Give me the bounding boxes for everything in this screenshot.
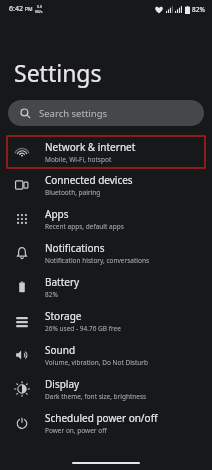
staticText: 0.6	[37, 4, 42, 9]
staticText: Power on, power off	[45, 426, 107, 435]
button[interactable]: Battery	[0, 270, 212, 304]
staticText: 6:42	[9, 4, 23, 14]
staticText: Dark theme, font size, brightness	[45, 392, 147, 401]
staticText: Notification history, conversations	[45, 256, 150, 265]
button[interactable]: Scheduled power on/off	[0, 406, 212, 440]
staticText: Storage	[45, 309, 82, 323]
staticText: Notifications	[45, 241, 105, 255]
staticText: 82%	[192, 5, 205, 14]
staticText: Bluetooth, pairing	[45, 188, 101, 197]
button[interactable]: Sound	[0, 338, 212, 372]
staticText: KB/s	[35, 9, 43, 14]
staticText: Sound	[45, 343, 76, 357]
staticText: 82%	[45, 290, 58, 299]
button[interactable]: Network & internet	[7, 136, 205, 168]
staticText: Search settings	[39, 107, 108, 120]
button[interactable]: Apps	[0, 202, 212, 236]
staticText: PM	[25, 6, 33, 13]
button[interactable]: Search settings	[8, 100, 204, 126]
staticText: Display	[45, 377, 80, 391]
staticText: Mobile, Wi-Fi, hotspot	[45, 155, 112, 164]
staticText: Connected devices	[45, 173, 133, 187]
button[interactable]: Notifications	[0, 236, 212, 270]
staticText: Settings	[14, 57, 102, 88]
staticText: Recent apps, default apps	[45, 222, 124, 231]
staticText: Network & internet	[45, 140, 136, 154]
staticText: Volume, vibration, Do Not Disturb	[45, 358, 149, 367]
button[interactable]: Storage	[0, 304, 212, 338]
staticText: Scheduled power on/off	[45, 411, 158, 425]
button[interactable]: Display	[0, 372, 212, 406]
button[interactable]: Connected devices	[0, 168, 212, 202]
other: Home gesture	[72, 462, 140, 464]
staticText: Battery	[45, 275, 80, 289]
staticText: Apps	[45, 207, 69, 221]
staticText: 26% used - 94.76 GB free	[45, 324, 121, 333]
